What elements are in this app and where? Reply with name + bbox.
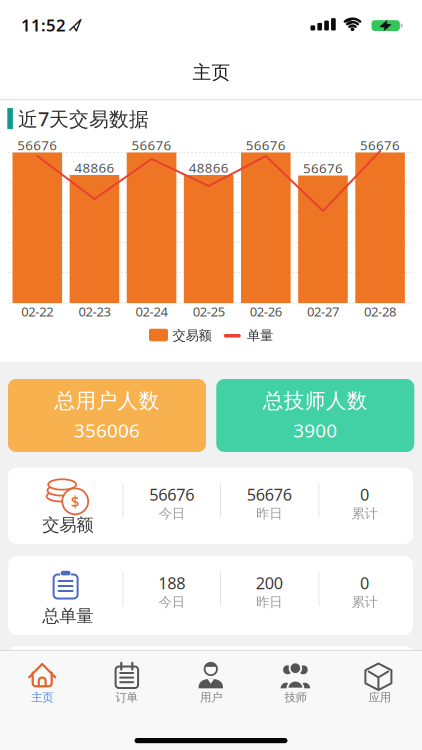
staticText: 02-23 <box>78 303 110 320</box>
button[interactable]: 订单 <box>84 650 169 750</box>
button[interactable]: 主页 <box>0 650 84 750</box>
staticText: 主页 <box>31 690 53 705</box>
staticText: 56676 <box>132 136 172 154</box>
staticText: 02-25 <box>193 303 225 320</box>
button[interactable]: 应用 <box>338 650 422 750</box>
button[interactable]: 总技师人数 <box>216 379 414 452</box>
staticText: 3900 <box>293 418 337 443</box>
staticText: 56676 <box>246 136 286 154</box>
staticText: 56676 <box>17 136 57 154</box>
staticText: 总技师人数 <box>263 388 368 414</box>
staticText: 02-24 <box>136 303 168 320</box>
staticText: 356006 <box>74 418 140 443</box>
staticText: 48866 <box>74 159 114 176</box>
staticText: 用户 <box>200 690 222 705</box>
button[interactable]: 总用户人数 <box>8 379 206 452</box>
staticText: 56676 <box>247 484 292 505</box>
staticText: 昨日 <box>256 594 282 610</box>
staticText: 02-26 <box>250 303 282 320</box>
button[interactable]: 用户 <box>169 650 253 750</box>
staticText: 累计 <box>351 505 377 522</box>
staticText: 今日 <box>159 594 185 610</box>
staticText: 累计 <box>351 594 377 610</box>
staticText: 0 <box>360 572 369 594</box>
staticText: 56676 <box>360 136 400 154</box>
staticText: $ <box>71 491 80 511</box>
staticText: 昨日 <box>256 505 282 522</box>
staticText: 单量 <box>247 327 273 344</box>
staticText: 交易额 <box>172 327 211 344</box>
staticText: 200 <box>256 572 283 594</box>
staticText: 56676 <box>303 159 343 177</box>
staticText: 56676 <box>149 484 194 505</box>
button[interactable]: 技师 <box>253 650 338 750</box>
staticText: 48866 <box>189 159 229 176</box>
staticText: 总用户人数 <box>54 388 159 414</box>
staticText: 近7天交易数据 <box>18 105 149 132</box>
staticText: 今日 <box>159 505 185 522</box>
staticText: 11:52 <box>21 14 66 36</box>
staticText: 总单量 <box>42 605 93 627</box>
staticText: 主页 <box>192 61 230 84</box>
staticText: 02-22 <box>21 303 53 320</box>
staticText: 0 <box>360 484 369 505</box>
staticText: 188 <box>158 572 185 594</box>
staticText: 02-27 <box>307 303 339 320</box>
staticText: 订单 <box>116 690 138 705</box>
staticText: 技师 <box>284 690 306 705</box>
staticText: 应用 <box>369 690 391 705</box>
staticText: 交易额 <box>42 514 93 536</box>
staticText: 02-28 <box>364 303 396 320</box>
